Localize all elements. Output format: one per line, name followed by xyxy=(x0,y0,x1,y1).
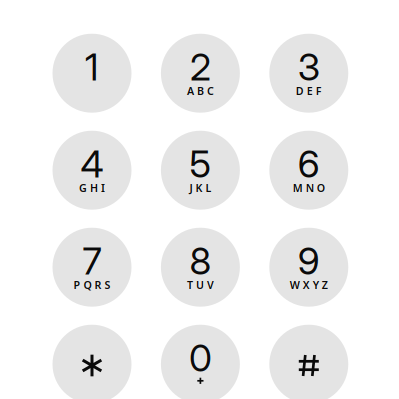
button[interactable]: Star xyxy=(52,325,131,399)
staticText: 5 xyxy=(189,141,211,186)
staticText: 9 xyxy=(298,238,320,283)
button[interactable]: Pound xyxy=(269,325,348,399)
button[interactable]: 7 P Q R S xyxy=(52,228,131,307)
staticText: ABC xyxy=(187,84,214,98)
staticText: TUV xyxy=(187,278,214,292)
button[interactable]: 8 T U V xyxy=(161,228,240,307)
button[interactable]: 3 D E F xyxy=(269,34,348,113)
staticText: 7 xyxy=(82,238,101,283)
staticText: WXYZ xyxy=(290,278,328,292)
button[interactable]: 9 W X Y Z xyxy=(269,228,348,307)
staticText: JKL xyxy=(189,181,211,195)
button[interactable]: 0 Plus xyxy=(161,325,240,399)
button[interactable]: 4 G H I xyxy=(52,131,131,210)
staticText: PQRS xyxy=(73,278,110,292)
button[interactable]: 1 xyxy=(52,34,131,113)
staticText: 1 xyxy=(85,44,99,89)
staticText: 0 xyxy=(189,335,212,380)
staticText: 6 xyxy=(298,141,320,186)
staticText: 2 xyxy=(190,44,211,89)
staticText: DEF xyxy=(296,84,322,98)
staticText: GHI xyxy=(79,181,105,195)
staticText: 8 xyxy=(189,238,211,283)
button[interactable]: 5 J K L xyxy=(161,131,240,210)
staticText: MNO xyxy=(293,181,325,195)
staticText: 4 xyxy=(80,141,103,186)
button[interactable]: 2 A B C xyxy=(161,34,240,113)
button[interactable]: 6 M N O xyxy=(269,131,348,210)
staticText: 3 xyxy=(298,44,320,89)
